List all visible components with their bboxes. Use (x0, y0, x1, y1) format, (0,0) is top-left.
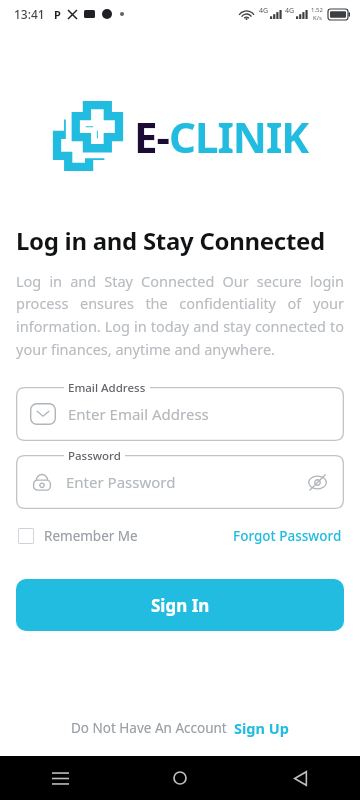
staticText: Password (68, 448, 121, 464)
staticText: Log in and Stay Connected (16, 224, 325, 257)
staticText: Email Address (68, 380, 146, 396)
staticText: Log in and Stay Connected Our secure log… (16, 271, 344, 359)
staticText: Forgot Password (233, 527, 342, 545)
button[interactable]: Sign In (16, 579, 344, 631)
button[interactable]: Home (120, 756, 240, 800)
button[interactable]: Show password (304, 469, 330, 495)
staticText: E-CLINIK (134, 108, 309, 165)
staticText: K/s (313, 14, 322, 22)
staticText: P (54, 7, 61, 22)
button[interactable]: Back (240, 756, 360, 800)
staticText: Remember Me (44, 527, 138, 545)
button[interactable]: Forgot Password (231, 523, 344, 549)
staticText: Sign In (151, 594, 210, 617)
staticText: Do Not Have An Account (71, 719, 227, 737)
staticText: 4G (285, 6, 295, 16)
button[interactable]: Sign Up (234, 718, 289, 738)
button[interactable]: Remember Me (16, 523, 140, 549)
staticText: Enter Password (66, 472, 176, 492)
staticText: Enter Email Address (68, 404, 209, 424)
button[interactable]: Password (16, 455, 344, 509)
other: Password (30, 470, 54, 494)
other: Email (30, 403, 56, 425)
staticText: 13:41 (14, 6, 45, 22)
button[interactable]: Email Address (16, 387, 344, 441)
staticText: 1,52 (311, 6, 323, 14)
button[interactable]: Recent apps (0, 756, 120, 800)
staticText: Sign Up (234, 718, 289, 738)
staticText: 4G (259, 6, 269, 16)
